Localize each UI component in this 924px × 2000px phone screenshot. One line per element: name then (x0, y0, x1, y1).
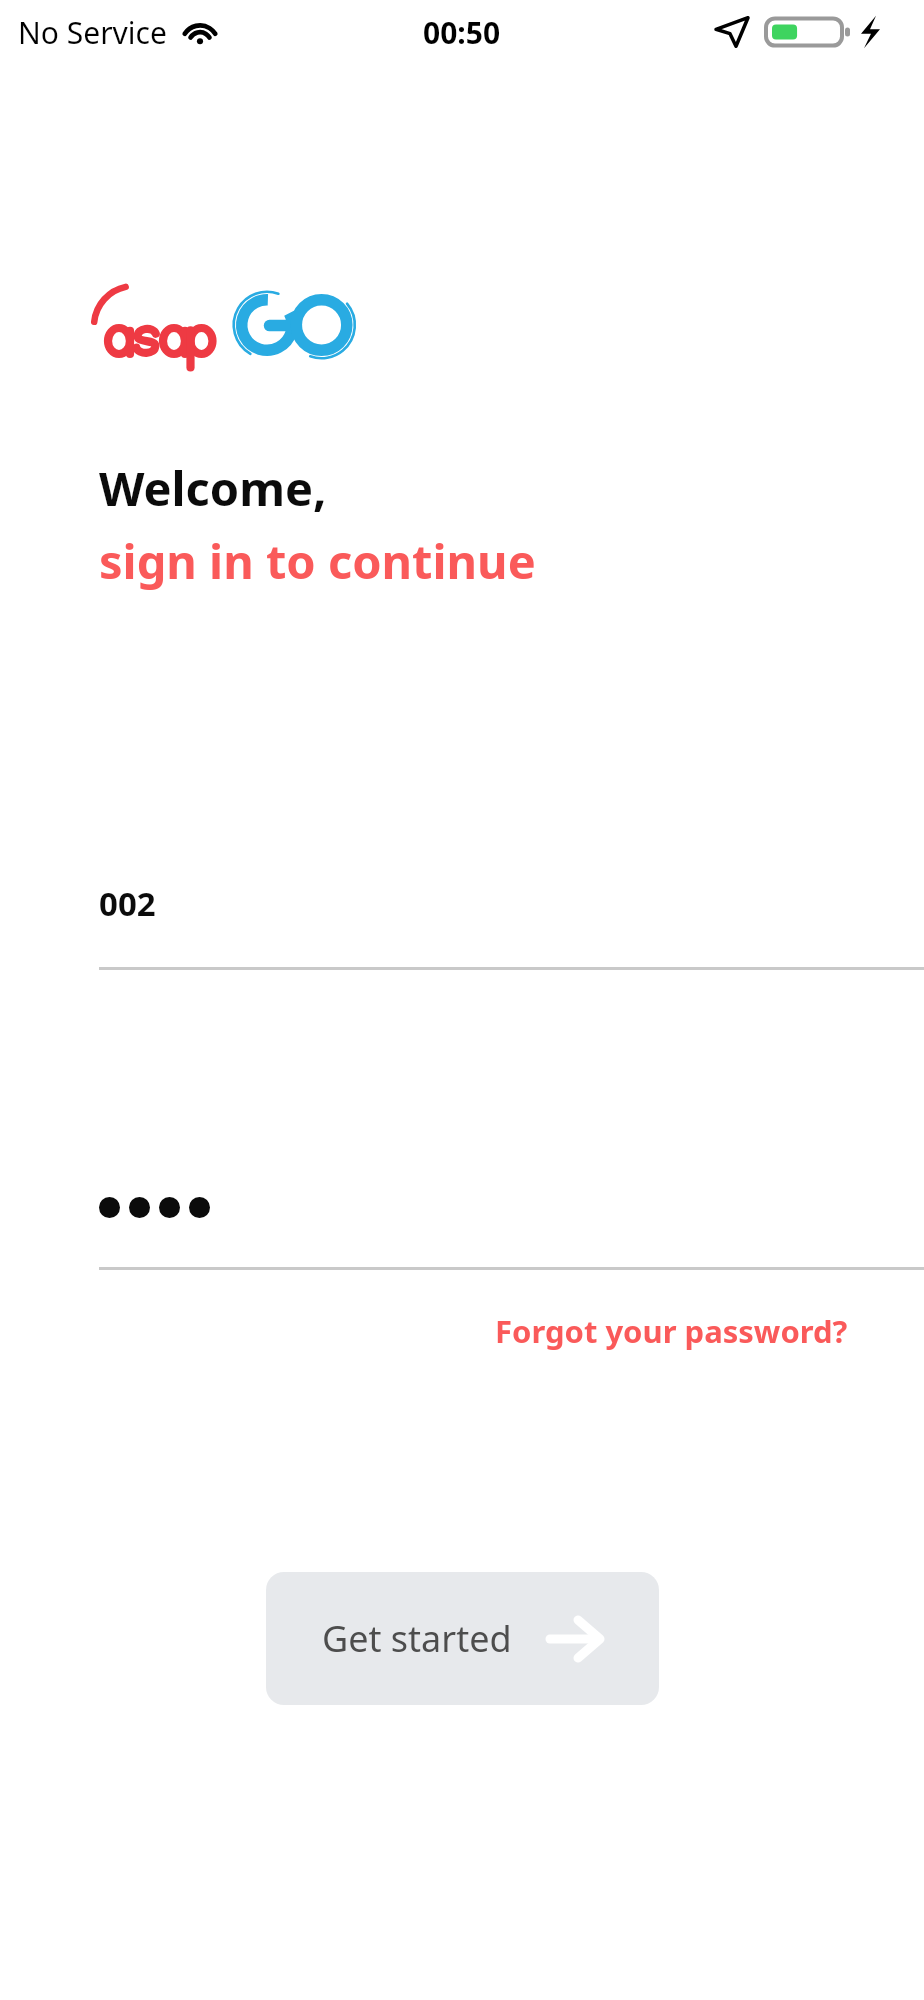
staticText: sign in to continue (99, 529, 536, 593)
other: Get started (548, 1616, 604, 1662)
staticText: Get started (322, 1614, 512, 1663)
button[interactable]: 002 (99, 848, 924, 970)
staticText: 00:50 (423, 12, 501, 53)
staticText: Forgot your password? (495, 1310, 848, 1352)
staticText: 002 (99, 881, 156, 926)
button[interactable]: Forgot your password? (489, 1300, 854, 1362)
button[interactable] (99, 1148, 924, 1270)
staticText: Welcome, (99, 456, 327, 520)
staticText: No Service (18, 12, 167, 53)
button[interactable]: Get started (266, 1572, 659, 1705)
